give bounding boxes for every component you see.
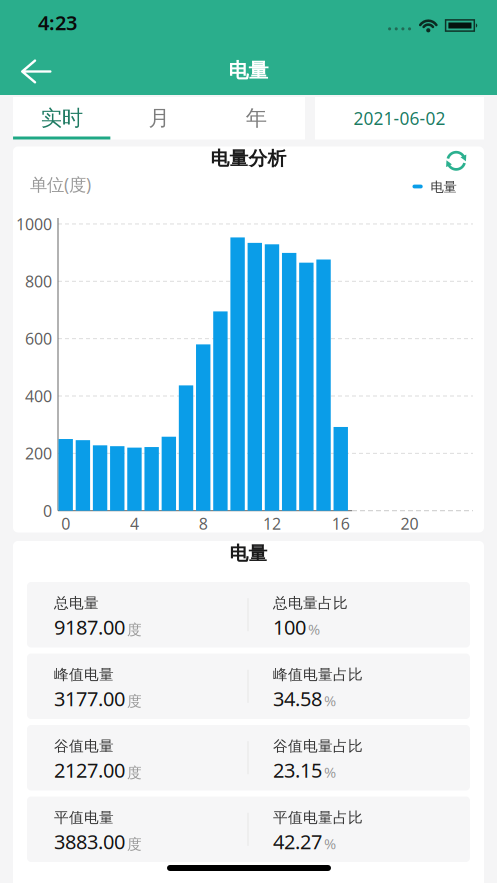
staticText: 电量分析 <box>210 147 286 170</box>
staticText: 2021-06-02 <box>353 107 445 130</box>
staticText: 实时 <box>41 105 83 131</box>
staticText: 200 <box>25 443 52 464</box>
staticText: 年 <box>246 105 267 131</box>
staticText: 3883.00 <box>54 828 125 855</box>
staticText: 峰值电量 <box>54 665 114 683</box>
staticText: % <box>308 619 320 639</box>
staticText: 3177.00 <box>54 685 125 712</box>
staticText: % <box>324 691 336 710</box>
staticText: 42.27 <box>273 828 322 855</box>
staticText: 100 <box>273 614 306 640</box>
staticText: 电量 <box>430 179 456 195</box>
staticText: 单位(度) <box>30 173 91 196</box>
staticText: 34.58 <box>273 685 322 712</box>
staticText: 峰值电量占比 <box>273 665 363 683</box>
staticText: 4:23 <box>38 9 77 36</box>
staticText: 20 <box>400 513 418 534</box>
staticText: 谷值电量占比 <box>273 737 363 755</box>
staticText: 平值电量占比 <box>273 808 363 826</box>
staticText: % <box>324 834 336 853</box>
staticText: 度 <box>127 835 142 853</box>
staticText: 月 <box>148 105 169 131</box>
staticText: 度 <box>127 764 142 782</box>
staticText: 1000 <box>16 213 52 234</box>
button[interactable]: 实时 <box>13 97 110 139</box>
staticText: 度 <box>127 692 142 710</box>
button[interactable]: Back <box>19 56 53 86</box>
staticText: 4 <box>130 513 139 534</box>
staticText: % <box>324 762 336 782</box>
button[interactable]: 年 <box>208 97 305 139</box>
button[interactable]: 2021-06-02 <box>315 97 484 139</box>
staticText: 谷值电量 <box>54 737 114 755</box>
staticText: 12 <box>263 513 281 534</box>
staticText: 总电量占比 <box>273 594 348 612</box>
staticText: 平值电量 <box>54 808 114 826</box>
staticText: 0 <box>61 513 70 534</box>
staticText: 9187.00 <box>54 614 125 640</box>
staticText: 度 <box>127 621 142 639</box>
staticText: 600 <box>25 328 52 349</box>
staticText: 16 <box>332 513 350 534</box>
staticText: 8 <box>199 513 208 534</box>
staticText: 0 <box>43 500 52 521</box>
staticText: 总电量 <box>54 594 99 612</box>
staticText: 2127.00 <box>54 757 125 783</box>
staticText: 800 <box>25 271 52 292</box>
staticText: 400 <box>25 385 52 407</box>
staticText: 23.15 <box>273 757 322 783</box>
button[interactable]: Refresh <box>444 149 468 173</box>
button[interactable]: 月 <box>110 97 208 139</box>
staticText: 电量 <box>229 542 267 565</box>
staticText: 电量 <box>228 58 268 83</box>
